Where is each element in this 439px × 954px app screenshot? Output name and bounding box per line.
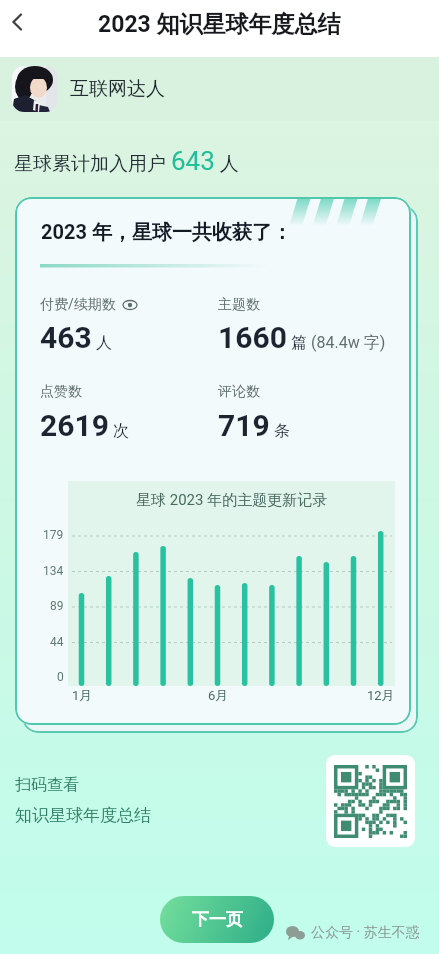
staticText: 篇 bbox=[287, 333, 311, 353]
staticText: 互联网达人 bbox=[70, 77, 165, 101]
button[interactable] bbox=[2, 6, 34, 38]
button[interactable]: 下一页 bbox=[160, 896, 274, 943]
staticText: 点赞数 bbox=[40, 383, 82, 401]
staticText: 134 bbox=[43, 564, 64, 578]
staticText: (84.4w 字) bbox=[311, 333, 386, 353]
staticText: 2619 bbox=[40, 408, 109, 443]
staticText: 89 bbox=[50, 599, 64, 613]
staticText: 179 bbox=[43, 528, 64, 542]
button[interactable] bbox=[326, 755, 415, 847]
staticText: 44 bbox=[50, 635, 64, 649]
staticText: 0 bbox=[57, 670, 64, 684]
staticText: 付费/续期数 bbox=[40, 296, 116, 314]
staticText: 星球累计加入用户 bbox=[14, 152, 171, 176]
staticText: 评论数 bbox=[218, 383, 260, 401]
staticText: 463 bbox=[40, 320, 92, 355]
staticText: 719 bbox=[218, 408, 270, 443]
staticText: 12月 bbox=[367, 687, 395, 703]
staticText: 公众号 · 苏生不惑 bbox=[311, 924, 420, 942]
staticText: 星球 2023 年的主题更新记录 bbox=[136, 491, 328, 510]
staticText: 1660 bbox=[218, 320, 287, 355]
staticText: 人 bbox=[215, 152, 239, 176]
staticText: 下一页 bbox=[192, 909, 243, 930]
staticText: 条 bbox=[270, 421, 290, 441]
staticText: 2023 知识星球年度总结 bbox=[98, 10, 341, 39]
staticText: 扫码查看 bbox=[15, 775, 79, 795]
staticText: 1月 bbox=[72, 687, 93, 703]
staticText: 6月 bbox=[208, 687, 229, 703]
staticText: 643 bbox=[171, 146, 215, 176]
staticText: 主题数 bbox=[218, 296, 260, 314]
staticText: 2023 年，星球一共收获了： bbox=[41, 220, 292, 245]
staticText: 次 bbox=[109, 421, 129, 441]
staticText: 知识星球年度总结 bbox=[15, 805, 151, 826]
staticText: 人 bbox=[92, 333, 112, 353]
button[interactable]: 互联网达人 bbox=[0, 57, 439, 121]
